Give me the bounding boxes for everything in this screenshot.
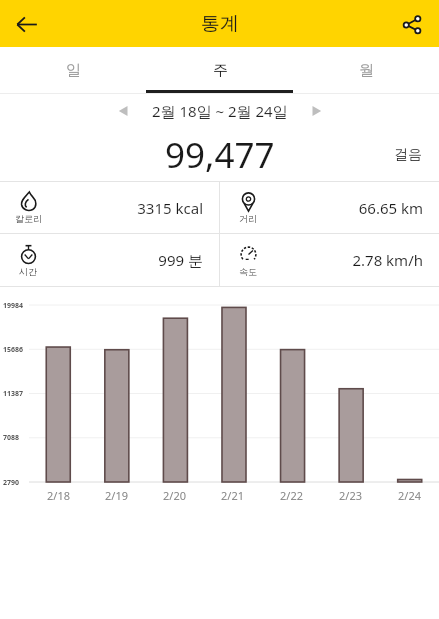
staticText: 99,477 bbox=[165, 131, 275, 179]
staticText: 2790 bbox=[3, 478, 20, 488]
button[interactable]: 일 bbox=[0, 47, 147, 93]
staticText: 2/22 bbox=[280, 488, 303, 503]
staticText: 시간 bbox=[19, 266, 37, 277]
staticText: 2/19 bbox=[105, 488, 128, 503]
staticText: 통계 bbox=[201, 12, 239, 36]
button[interactable]: Previous period bbox=[108, 96, 138, 126]
staticText: 걸음 bbox=[394, 146, 422, 164]
staticText: 2/18 bbox=[47, 488, 70, 503]
staticText: 2/21 bbox=[221, 488, 244, 503]
staticText: 2/23 bbox=[339, 488, 362, 503]
staticText: 2/24 bbox=[398, 488, 421, 503]
staticText: 2/20 bbox=[163, 488, 186, 503]
button[interactable]: 속도 bbox=[220, 234, 439, 286]
staticText: 주 bbox=[213, 61, 228, 80]
button[interactable]: Next period bbox=[302, 96, 332, 126]
button[interactable]: 거리 bbox=[220, 182, 439, 233]
staticText: 칼로리 bbox=[15, 213, 42, 224]
staticText: 999 분 bbox=[43, 250, 203, 270]
button[interactable]: 시간 bbox=[0, 234, 219, 286]
staticText: 월 bbox=[359, 61, 374, 80]
button[interactable]: Back bbox=[5, 3, 47, 45]
staticText: 66.65 km bbox=[263, 198, 423, 218]
staticText: 11387 bbox=[3, 389, 24, 399]
staticText: 일 bbox=[66, 61, 81, 80]
staticText: 거리 bbox=[239, 213, 257, 224]
staticText: 3315 kcal bbox=[43, 198, 203, 218]
button[interactable]: 월 bbox=[293, 47, 439, 93]
staticText: 15686 bbox=[3, 345, 24, 355]
staticText: 19984 bbox=[3, 301, 24, 311]
button[interactable]: 주 bbox=[147, 47, 293, 93]
staticText: 7088 bbox=[3, 433, 20, 443]
staticText: 2월 18일 ~ 2월 24일 bbox=[152, 101, 288, 121]
staticText: 속도 bbox=[239, 266, 257, 277]
staticText: 2.78 km/h bbox=[263, 250, 423, 270]
button[interactable]: 칼로리 bbox=[0, 182, 219, 233]
button[interactable]: Share bbox=[390, 3, 432, 45]
